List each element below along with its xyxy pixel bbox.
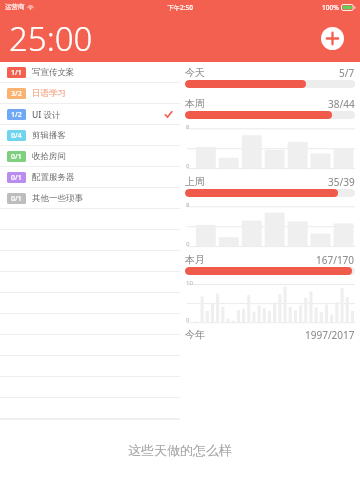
staticText: 8 bbox=[186, 201, 190, 209]
button[interactable]: 3/2 bbox=[0, 83, 180, 104]
button[interactable]: 今年 bbox=[185, 327, 355, 342]
staticText: 上周 bbox=[185, 175, 205, 188]
staticText: 8 bbox=[186, 123, 190, 131]
button[interactable]: 0/1 bbox=[0, 188, 180, 209]
button[interactable]: 0/1 bbox=[0, 146, 180, 167]
staticText: 这些天做的怎么样 bbox=[128, 442, 232, 458]
staticText: 0/4 bbox=[11, 131, 22, 141]
staticText: 1/2 bbox=[11, 110, 22, 120]
staticText: UI 设计 bbox=[32, 109, 61, 121]
staticText: 今天 bbox=[185, 66, 205, 79]
staticText: 运营商 bbox=[5, 3, 25, 11]
staticText: 100% bbox=[322, 3, 339, 12]
staticText: 10 bbox=[186, 279, 193, 287]
staticText: 本月 bbox=[185, 253, 205, 266]
staticText: 38/44 bbox=[328, 97, 355, 111]
button[interactable]: 0/4 bbox=[0, 125, 180, 146]
staticText: 3/2 bbox=[11, 89, 22, 99]
staticText: 收拾房间 bbox=[32, 151, 66, 162]
staticText: 本周 bbox=[185, 97, 205, 110]
staticText: 1/1 bbox=[11, 68, 22, 78]
staticText: 35/39 bbox=[328, 175, 355, 189]
button[interactable]: 本月 bbox=[185, 252, 355, 267]
staticText: 写宣传文案 bbox=[32, 67, 75, 78]
staticText: 0 bbox=[186, 240, 190, 248]
staticText: 0 bbox=[186, 162, 190, 170]
staticText: 其他一些琐事 bbox=[32, 193, 83, 204]
button[interactable]: 今天 bbox=[185, 65, 355, 80]
button[interactable]: 本周 bbox=[185, 96, 355, 111]
staticText: 日语学习 bbox=[32, 88, 66, 99]
button[interactable]: 1/1 bbox=[0, 62, 180, 83]
staticText: 配置服务器 bbox=[32, 172, 75, 183]
staticText: 剪辑播客 bbox=[32, 130, 66, 141]
button[interactable]: 上周 bbox=[185, 174, 355, 189]
staticText: 1997/2017 bbox=[305, 328, 355, 342]
button[interactable]: Add task bbox=[321, 27, 344, 50]
staticText: 167/170 bbox=[316, 253, 355, 267]
staticText: 25:00 bbox=[9, 16, 93, 61]
staticText: 今年 bbox=[185, 328, 205, 341]
staticText: 5/7 bbox=[339, 66, 355, 80]
staticText: 0/1 bbox=[11, 173, 22, 183]
staticText: 0/1 bbox=[11, 194, 22, 204]
button[interactable]: 0/1 bbox=[0, 167, 180, 188]
button[interactable]: 1/2 bbox=[0, 104, 180, 125]
staticText: 下午2:50 bbox=[167, 3, 193, 12]
staticText: 0/1 bbox=[11, 152, 22, 162]
staticText: 0 bbox=[186, 316, 190, 324]
